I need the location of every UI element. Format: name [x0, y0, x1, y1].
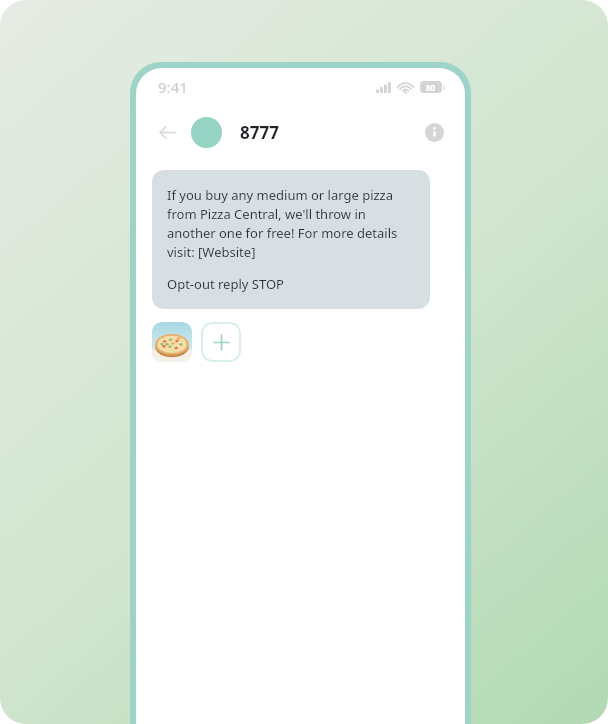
button[interactable]: Add attachment — [201, 322, 241, 362]
staticText: Opt-out reply STOP — [167, 275, 284, 293]
staticText: 9:41 — [158, 77, 188, 97]
staticText: If you buy any medium or large pizza fro… — [167, 186, 415, 261]
staticText: 80 — [426, 82, 436, 93]
button[interactable]: Back — [152, 117, 182, 147]
button[interactable]: Pizza photo attachment — [152, 322, 192, 362]
button[interactable]: Conversation details — [419, 117, 449, 147]
staticText: 8777 — [240, 121, 279, 144]
button[interactable]: If you buy any medium or large pizza fro… — [152, 170, 430, 309]
button[interactable]: Contact avatar — [191, 117, 222, 148]
